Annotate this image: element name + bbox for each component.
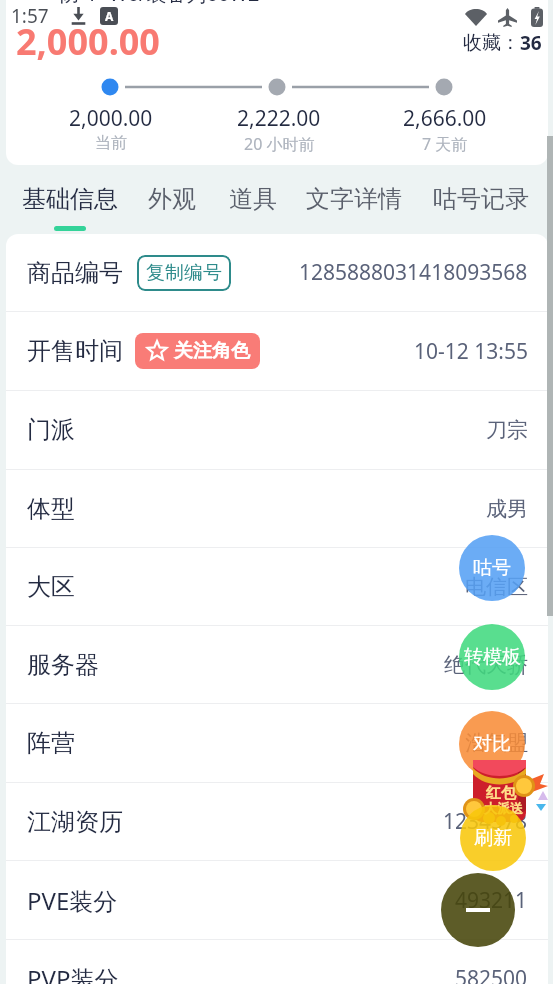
staticText: 咕号 <box>473 556 511 580</box>
staticText: PVE装分 <box>27 884 118 917</box>
staticText: 门派 <box>27 415 75 445</box>
button[interactable]: PVP装分 <box>27 940 528 984</box>
staticText: 36 <box>520 30 542 56</box>
button[interactable]: 商品编号 <box>27 234 528 311</box>
staticText: 1234578 <box>443 807 528 836</box>
button[interactable]: 大区 <box>27 548 528 625</box>
staticText: 2,000.00 <box>69 104 153 133</box>
staticText: 大派送 <box>484 800 523 816</box>
staticText: 7 天前 <box>422 133 468 155</box>
button[interactable]: 外观 <box>148 184 196 226</box>
staticText: 刷新 <box>474 826 512 850</box>
button[interactable]: 服务器 <box>27 626 528 703</box>
staticText: 1285888031418093568 <box>299 258 528 287</box>
staticText: 基础信息 <box>22 184 118 214</box>
button[interactable]: 咕号记录 <box>433 184 529 226</box>
button[interactable]: 开售时间 <box>27 312 528 390</box>
staticText: 江湖资历 <box>27 807 123 837</box>
staticText: PVP装分 <box>27 962 119 984</box>
button[interactable]: Collapse <box>441 873 515 947</box>
button[interactable]: 收藏： <box>463 30 542 56</box>
staticText: 道具 <box>229 184 277 214</box>
staticText: 成男 <box>486 496 528 522</box>
staticText: 咕号记录 <box>433 184 529 214</box>
button[interactable]: 刷新 <box>460 805 526 871</box>
staticText: 防-T+W6/装备为60W2 <box>60 0 260 7</box>
button[interactable]: 基础信息 <box>22 184 118 231</box>
staticText: 2,666.00 <box>403 104 487 133</box>
staticText: 浩气盟 <box>465 730 528 756</box>
staticText: 阵营 <box>27 728 75 758</box>
button[interactable]: 对比 <box>459 711 525 777</box>
staticText: 体型 <box>27 494 75 524</box>
staticText: 外观 <box>148 184 196 214</box>
button[interactable]: 复制编号 <box>146 261 222 285</box>
staticText: 10-12 13:55 <box>414 337 528 366</box>
staticText: 电信区 <box>465 574 528 600</box>
staticText: 2,222.00 <box>237 104 321 133</box>
staticText: 大区 <box>27 572 75 602</box>
button[interactable]: 关注角色 <box>146 339 250 363</box>
staticText: 关注角色 <box>174 339 250 363</box>
staticText: 493211 <box>455 886 528 915</box>
staticText: 收藏： <box>463 31 520 55</box>
staticText: A <box>105 8 114 24</box>
button[interactable]: 咕号 <box>459 535 525 601</box>
staticText: 开售时间 <box>27 336 123 366</box>
staticText: 刀宗 <box>486 417 528 443</box>
button[interactable]: 转模板 <box>459 624 525 690</box>
staticText: 服务器 <box>27 650 99 680</box>
staticText: 绝代天骄 <box>444 652 528 678</box>
staticText: 转模板 <box>464 645 521 669</box>
staticText: 商品编号 <box>27 258 123 288</box>
staticText: 当前 <box>95 133 127 153</box>
button[interactable]: 体型 <box>27 470 528 547</box>
button[interactable]: 阵营 <box>27 704 528 782</box>
staticText: 复制编号 <box>146 261 222 285</box>
staticText: 582500 <box>455 964 528 984</box>
button[interactable]: 文字详情 <box>306 184 402 226</box>
staticText: 20 小时前 <box>244 133 315 155</box>
staticText: 1:57 <box>11 3 49 29</box>
staticText: 2,000.00 <box>16 17 160 66</box>
staticText: 文字详情 <box>306 184 402 214</box>
button[interactable]: PVE装分 <box>27 861 528 939</box>
button[interactable]: 道具 <box>229 184 277 226</box>
button[interactable]: 门派 <box>27 391 528 469</box>
staticText: 对比 <box>473 732 511 756</box>
staticText: 红包 <box>486 784 516 803</box>
button[interactable]: 江湖资历 <box>27 783 528 860</box>
